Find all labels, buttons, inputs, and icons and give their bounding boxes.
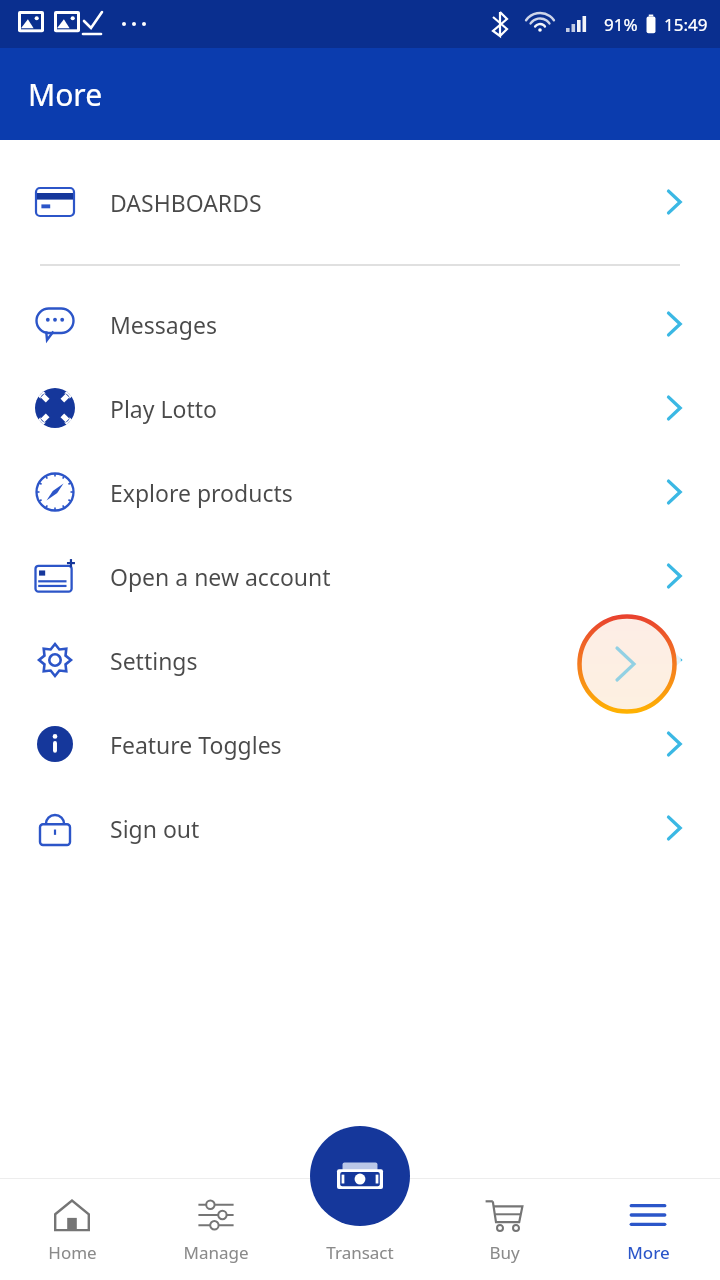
button[interactable]: Explore products [0,450,720,534]
button[interactable]: Messages [0,282,720,366]
staticText: More [627,1241,670,1264]
staticText: Buy [489,1241,520,1264]
button[interactable]: Open a new account [0,534,720,618]
button[interactable]: Feature Toggles [0,702,720,786]
staticText: 15:49 [664,13,708,36]
button[interactable]: DASHBOARDS [0,160,720,244]
button[interactable]: Home [0,1179,144,1280]
staticText: Sign out [110,813,628,844]
button[interactable]: Transact [310,1126,410,1226]
staticText: Open a new account [110,561,628,592]
staticText: DASHBOARDS [110,187,628,218]
staticText: Messages [110,309,628,340]
staticText: Feature Toggles [110,729,628,760]
staticText: Transact [326,1241,394,1264]
button[interactable]: Buy [432,1179,576,1280]
button[interactable]: Play Lotto [0,366,720,450]
button[interactable]: Transact [288,1179,432,1280]
button[interactable]: Settings [0,618,720,702]
staticText: Home [48,1241,97,1264]
staticText: Manage [183,1241,249,1264]
staticText: Explore products [110,477,628,508]
staticText: Settings [110,645,628,676]
button[interactable]: Sign out [0,786,720,870]
staticText: Play Lotto [110,393,628,424]
button[interactable]: More [576,1179,720,1280]
staticText: More [28,74,103,115]
staticText: 91% [604,13,638,36]
button[interactable]: Manage [144,1179,288,1280]
